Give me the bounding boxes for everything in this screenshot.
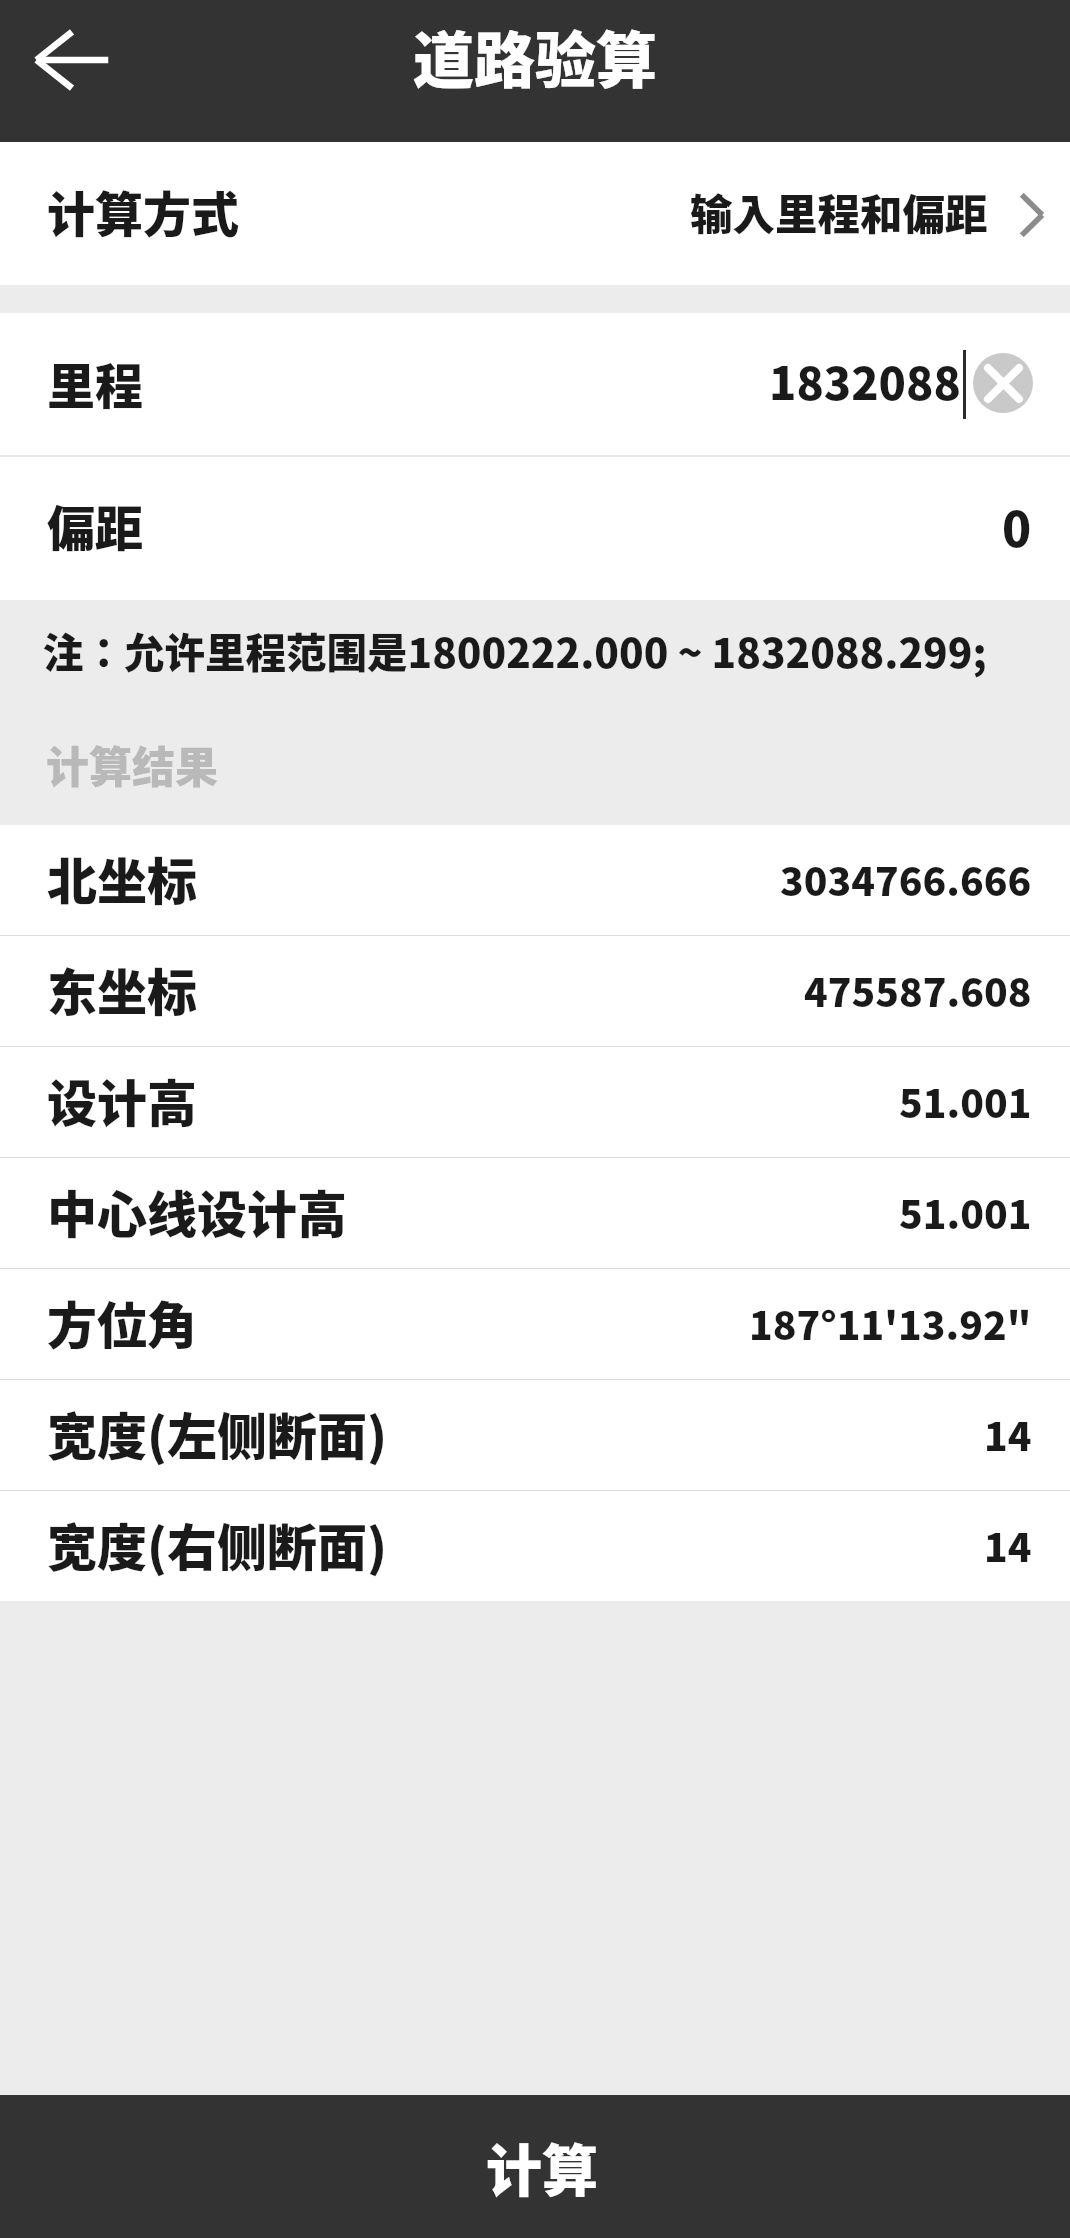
button[interactable]: 计算方式 xyxy=(0,142,1070,285)
staticText: 3034766.666 xyxy=(780,851,1032,907)
staticText: 方位角 xyxy=(47,1286,197,1358)
staticText: 道路验算 xyxy=(413,12,658,100)
button[interactable]: 计算 xyxy=(0,2095,1070,2238)
staticText: 0 xyxy=(1002,491,1032,561)
staticText: 计算 xyxy=(486,2126,598,2207)
button[interactable]: 方位角 xyxy=(0,1269,1070,1379)
button[interactable]: 东坐标 xyxy=(0,936,1070,1046)
staticText: 14 xyxy=(984,1406,1032,1462)
staticText: 计算方式 xyxy=(47,176,240,246)
staticText: 51.001 xyxy=(899,1073,1032,1129)
staticText: 偏距 xyxy=(47,490,144,560)
button[interactable]: 中心线设计高 xyxy=(0,1158,1070,1268)
staticText: 宽度(左侧断面) xyxy=(47,1397,387,1469)
staticText: 设计高 xyxy=(47,1064,197,1136)
staticText: 1832088 xyxy=(769,348,961,413)
staticText: 中心线设计高 xyxy=(47,1175,347,1247)
button[interactable]: 设计高 xyxy=(0,1047,1070,1157)
button[interactable]: 北坐标 xyxy=(0,825,1070,935)
staticText: 475587.608 xyxy=(804,962,1032,1018)
staticText: 东坐标 xyxy=(47,953,197,1025)
button[interactable]: 宽度(右侧断面) xyxy=(0,1491,1070,1601)
staticText: 输入里程和偏距 xyxy=(690,181,988,243)
staticText: 计算结果 xyxy=(46,733,218,795)
staticText: 187°11'13.92" xyxy=(749,1295,1032,1351)
staticText: 14 xyxy=(984,1517,1032,1573)
staticText: 注：允许里程范围是1800222.000 ~ 1832088.299; xyxy=(43,621,987,680)
button[interactable]: Clear text xyxy=(973,353,1033,413)
button[interactable]: 宽度(左侧断面) xyxy=(0,1380,1070,1490)
staticText: 里程 xyxy=(47,348,144,418)
staticText: 宽度(右侧断面) xyxy=(47,1508,387,1580)
button[interactable]: Back xyxy=(0,0,144,120)
staticText: 51.001 xyxy=(899,1184,1032,1240)
staticText: 北坐标 xyxy=(47,842,197,914)
button[interactable]: 里程 xyxy=(0,313,1070,455)
button[interactable]: 偏距 xyxy=(0,457,1070,600)
